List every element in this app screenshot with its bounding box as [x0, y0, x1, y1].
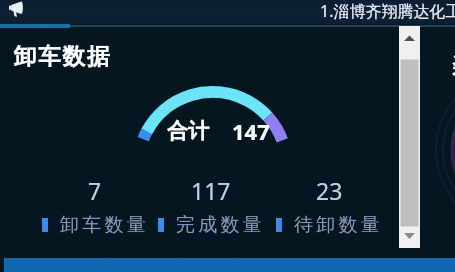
- button[interactable]: Scroll bar: [399, 26, 420, 248]
- button[interactable]: 7: [0, 175, 205, 237]
- staticText: 待卸数量: [294, 213, 383, 237]
- staticText: 装车数据: [452, 52, 455, 82]
- staticText: 卸车数量: [60, 213, 149, 237]
- staticText: 合计: [167, 118, 209, 144]
- staticText: 23: [316, 175, 343, 206]
- button[interactable]: 117: [101, 175, 321, 237]
- staticText: 卸车数据: [14, 42, 112, 70]
- staticText: 117: [191, 175, 231, 206]
- staticText: 完成数量: [176, 213, 265, 237]
- staticText: 7: [88, 175, 102, 206]
- staticText: 1.淄博齐翔腾达化工: [320, 0, 455, 22]
- staticText: 147: [232, 116, 270, 146]
- button[interactable]: Announcements: [6, 0, 28, 20]
- button[interactable]: 23: [219, 175, 439, 237]
